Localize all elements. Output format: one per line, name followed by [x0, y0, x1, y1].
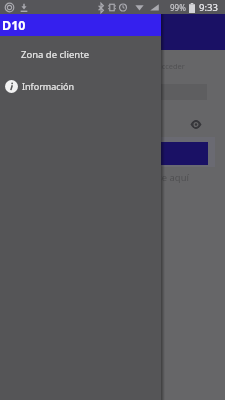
staticText: Introduzca su usuario y contraseña para … [16, 61, 185, 71]
staticText: Información [22, 80, 74, 92]
staticText: 9:33 [199, 1, 218, 14]
button[interactable]: Información [0, 74, 161, 98]
staticText: Zona de cliente [21, 48, 90, 61]
button[interactable]: ¿Ha olvidado su contraseña? Pulse aquí [16, 171, 189, 184]
staticText: ¿Ha olvidado su contraseña? Pulse aquí [16, 171, 189, 184]
button[interactable]: Zona de cliente [0, 42, 161, 66]
staticText: 99% [170, 2, 186, 13]
staticText: D10 [2, 17, 26, 34]
button[interactable]: ENTRAR [16, 142, 208, 165]
button[interactable]: Mostrar contraseña [186, 114, 206, 134]
button[interactable] [16, 84, 207, 100]
